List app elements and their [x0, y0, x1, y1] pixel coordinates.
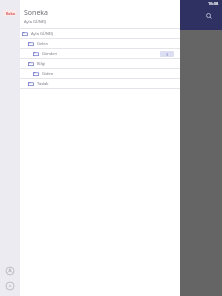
button[interactable]: Search	[204, 11, 214, 21]
button[interactable]: Account	[5, 266, 14, 275]
staticText: Ayla GÜNEŞ	[24, 19, 47, 24]
staticText: Ayla GÜNEŞ	[31, 31, 174, 36]
staticText: Bilgi	[37, 61, 174, 66]
button[interactable]: Ayla GÜNEŞ	[20, 29, 180, 39]
staticText: Giden	[42, 71, 174, 76]
staticText: 16:08	[208, 1, 219, 6]
button[interactable]: App logo	[3, 10, 17, 16]
button[interactable]: Gönderi	[20, 49, 180, 59]
staticText: Taslak	[37, 81, 174, 86]
button[interactable]: Taslak	[20, 79, 180, 89]
staticText: Gelen	[37, 41, 174, 46]
button[interactable]: Giden	[20, 69, 180, 79]
button[interactable]: Gelen	[20, 39, 180, 49]
staticText: 3	[166, 52, 169, 57]
button[interactable]: Bilgi	[20, 59, 180, 69]
staticText: Gönderi	[42, 51, 160, 56]
button[interactable]: Help	[5, 281, 14, 290]
staticText: Kobo	[6, 11, 15, 16]
staticText: Soneka	[24, 8, 49, 18]
